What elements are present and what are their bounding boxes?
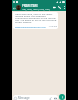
staticText: Message xyxy=(18,96,30,100)
staticText: Hello everyone, here is the latest updat… xyxy=(15,12,57,24)
button[interactable]: Hello everyone, here is the latest updat… xyxy=(13,12,58,29)
button[interactable]: Call xyxy=(57,5,62,10)
button[interactable]: Voice message xyxy=(59,94,65,100)
button[interactable]: Message xyxy=(13,95,58,100)
button[interactable]: Camera xyxy=(54,97,57,100)
staticText: PRIMETIME xyxy=(22,4,38,8)
staticText: You, Amit, Neha, Ravi, Sara, +6 xyxy=(22,8,52,11)
button[interactable]: Video call xyxy=(52,5,57,10)
staticText: www.belmeetupforum.org xyxy=(15,25,46,28)
button[interactable]: Attach xyxy=(49,97,52,100)
button[interactable]: More options xyxy=(62,6,66,10)
button[interactable]: Back xyxy=(12,6,16,10)
staticText: 11:42 am xyxy=(48,25,57,28)
